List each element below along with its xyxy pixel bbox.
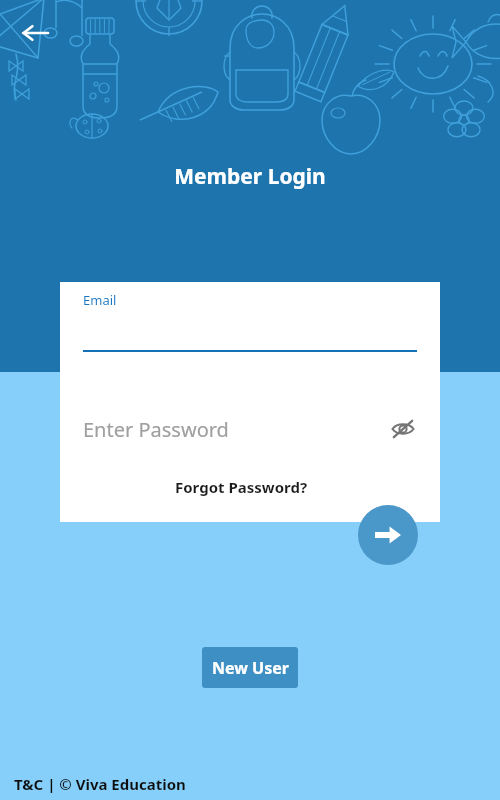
button[interactable]: Back (12, 10, 58, 56)
staticText: Member Login (174, 162, 326, 191)
staticText: Forgot Password? (175, 477, 308, 497)
staticText: Enter Password (83, 416, 386, 443)
button[interactable]: Enter Password (83, 412, 420, 446)
staticText: Email (83, 291, 117, 309)
button[interactable]: Login (358, 505, 418, 565)
button[interactable]: New User (202, 647, 298, 688)
button[interactable]: T&C | © Viva Education (14, 774, 186, 794)
staticText: T&C | © Viva Education (14, 774, 186, 794)
button[interactable]: Forgot Password? (171, 475, 312, 499)
staticText: New User (212, 657, 289, 679)
button[interactable]: Show password (386, 412, 420, 446)
